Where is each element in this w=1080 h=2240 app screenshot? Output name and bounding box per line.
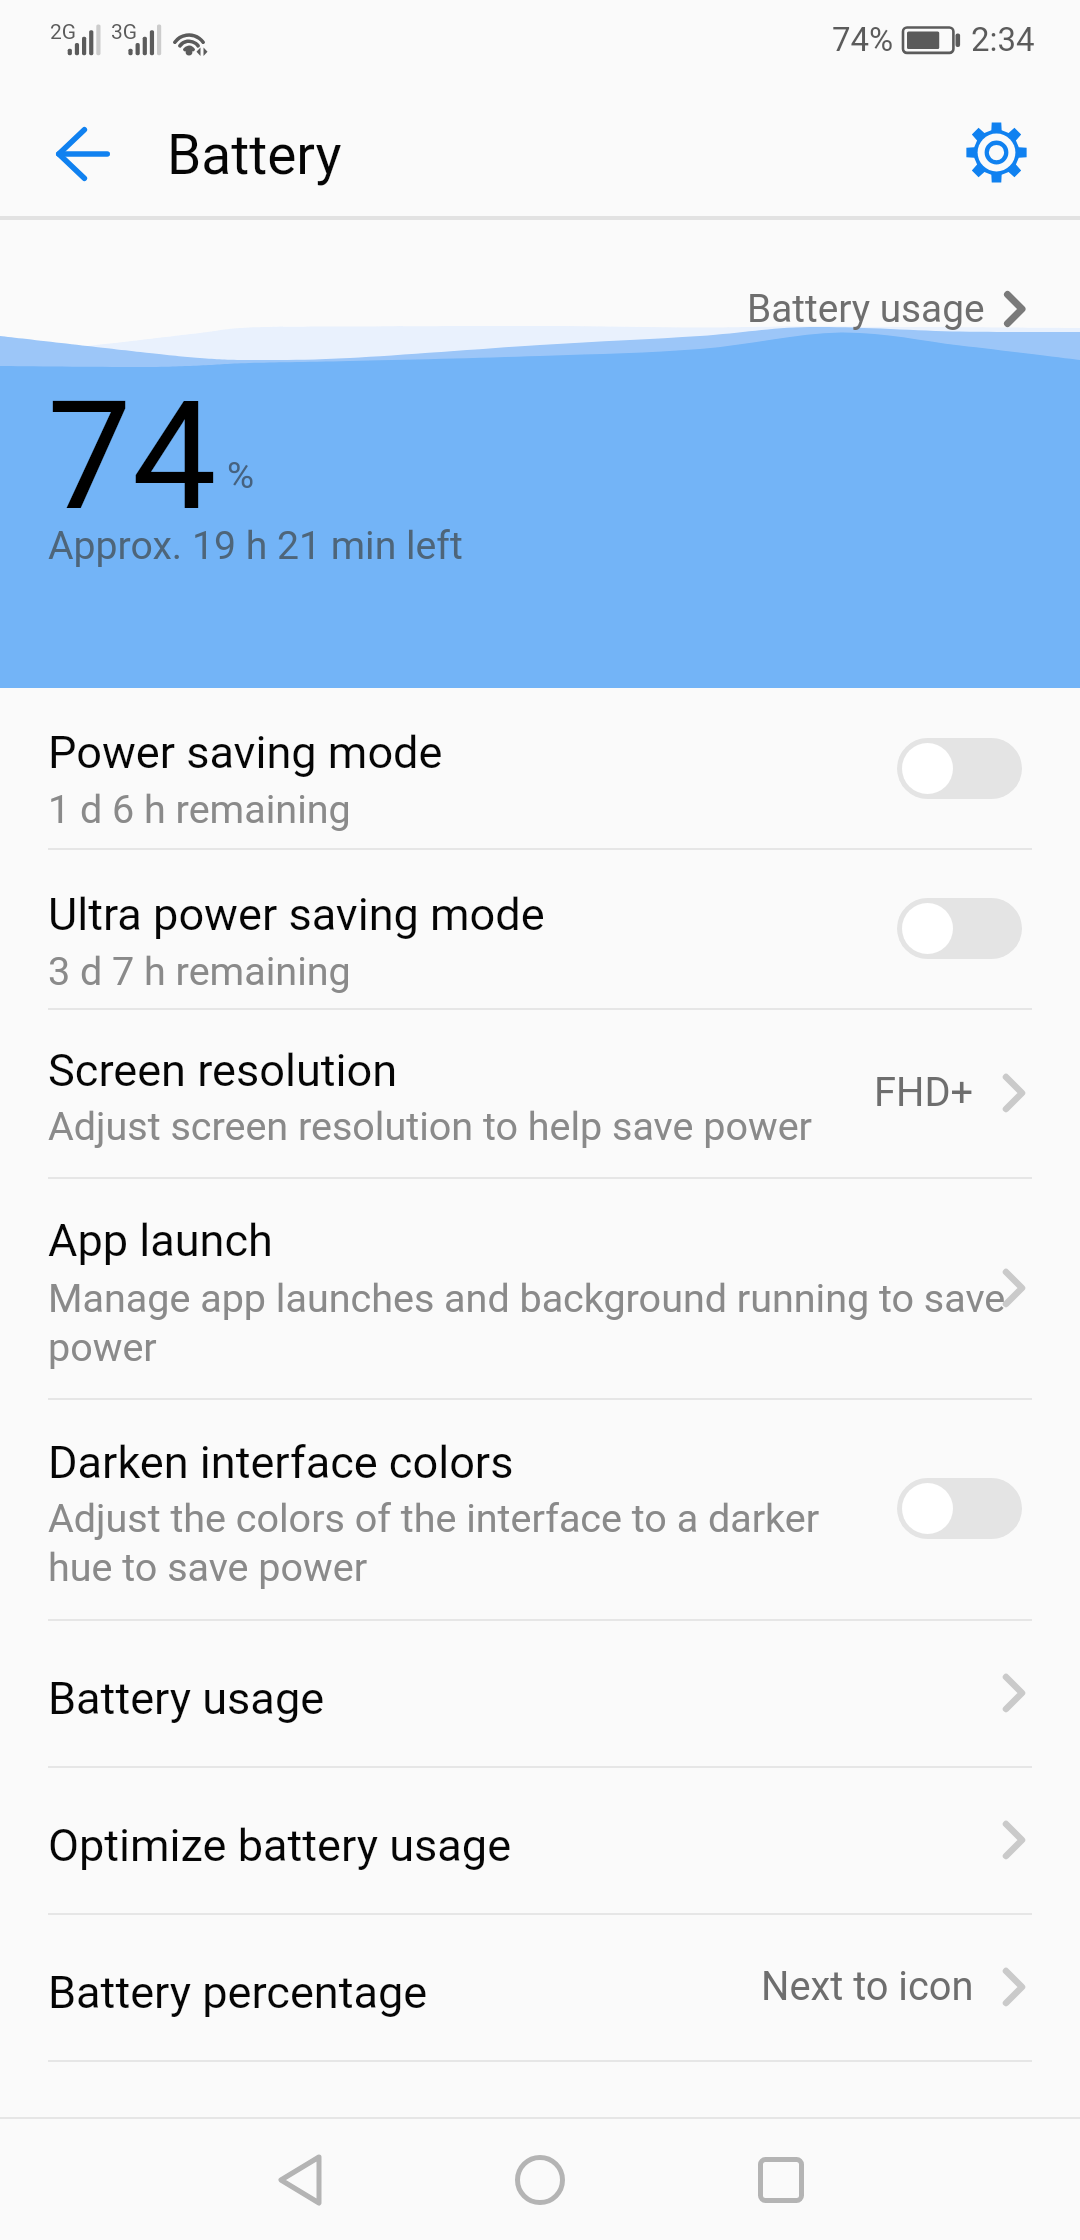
staticText: Adjust screen resolution to help save po… — [48, 1103, 812, 1149]
button[interactable]: Screen resolution — [0, 1008, 1080, 1177]
staticText: Darken interface colors — [48, 1436, 514, 1489]
staticText: Adjust the colors of the interface to a … — [48, 1495, 890, 1590]
staticText: 3 d 7 h remaining — [48, 948, 351, 994]
button[interactable]: Power saving mode — [0, 688, 1080, 848]
staticText: FHD+ — [874, 1069, 974, 1116]
button[interactable]: Optimize battery usage — [0, 1766, 1080, 1913]
button[interactable]: App launch — [0, 1177, 1080, 1398]
button[interactable]: Battery usage — [727, 270, 1040, 348]
button[interactable]: Back — [28, 99, 138, 209]
button[interactable]: Ultra power saving mode — [0, 848, 1080, 1009]
staticText: 3G — [111, 20, 138, 45]
staticText: Manage app launches and background runni… — [48, 1275, 1010, 1370]
button[interactable]: Battery usage — [0, 1619, 1080, 1766]
staticText: Next to icon — [761, 1963, 974, 2010]
staticText: 2G — [50, 20, 77, 45]
staticText: % — [227, 454, 255, 497]
button[interactable]: Battery percentage — [0, 1913, 1080, 2060]
staticText: Ultra power saving mode — [48, 888, 545, 941]
button[interactable]: Back — [247, 2127, 353, 2233]
staticText: Battery — [167, 123, 342, 187]
staticText: Battery percentage — [48, 1966, 428, 2019]
button[interactable]: Home — [487, 2127, 593, 2233]
staticText: Battery usage — [48, 1672, 325, 1725]
staticText: Battery usage — [747, 286, 985, 331]
staticText: 2:34 — [971, 20, 1035, 59]
button[interactable]: Recents — [728, 2127, 834, 2233]
staticText: Approx. 19 h 21 min left — [48, 523, 463, 569]
staticText: Power saving mode — [48, 726, 443, 779]
button[interactable]: Settings — [946, 102, 1046, 202]
button[interactable]: Darken interface colors — [0, 1398, 1080, 1619]
button[interactable]: Ultra power saving mode — [897, 898, 1022, 959]
staticText: 74% — [832, 20, 894, 59]
staticText: App launch — [48, 1214, 273, 1267]
staticText: 1 d 6 h remaining — [48, 786, 351, 832]
staticText: Optimize battery usage — [48, 1819, 512, 1872]
staticText: 74 — [47, 368, 217, 545]
button[interactable]: Darken interface colors — [897, 1478, 1022, 1539]
staticText: Screen resolution — [48, 1044, 398, 1097]
button[interactable]: Power saving mode — [897, 738, 1022, 799]
